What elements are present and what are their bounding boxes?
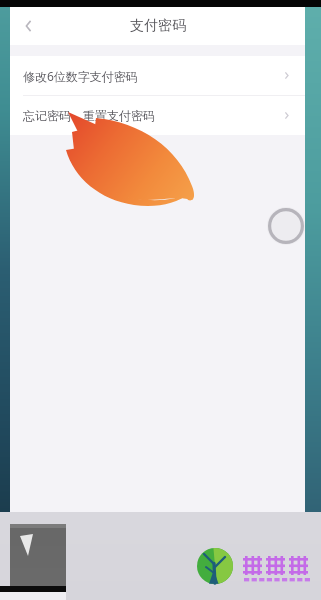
button[interactable]: 修改6位数字支付密码 [10,56,305,95]
staticText: 修改6位数字支付密码 [23,68,281,84]
button[interactable]: Back [10,7,48,45]
staticText: 忘记密码，重置支付密码 [23,108,281,123]
button[interactable]: 忘记密码，重置支付密码 [10,96,305,135]
staticText: 支付密码 [130,17,186,35]
